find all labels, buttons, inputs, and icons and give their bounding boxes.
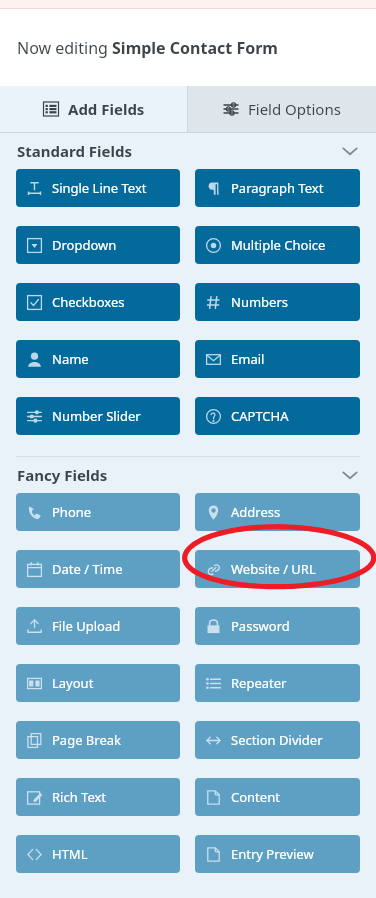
staticText: Now editing Simple Contact Form	[17, 37, 278, 59]
staticText: Checkboxes	[52, 293, 125, 311]
button[interactable]: Email	[195, 340, 360, 378]
staticText: Add Fields	[68, 99, 145, 119]
button[interactable]: Date / Time	[16, 550, 180, 588]
staticText: Single Line Text	[52, 179, 147, 197]
button[interactable]: Rich Text	[16, 778, 180, 816]
staticText: CAPTCHA	[231, 407, 289, 425]
staticText: Entry Preview	[231, 845, 314, 863]
button[interactable]: Multiple Choice	[195, 226, 360, 264]
staticText: Standard Fields	[17, 141, 132, 161]
staticText: Password	[231, 617, 290, 635]
staticText: Website / URL	[231, 560, 316, 578]
button[interactable]: Page Break	[16, 721, 180, 759]
button[interactable]: Checkboxes	[16, 283, 180, 321]
staticText: File Upload	[52, 617, 121, 635]
button[interactable]: Collapse Standard Fields	[338, 139, 362, 163]
staticText: Rich Text	[52, 788, 107, 806]
staticText: Phone	[52, 503, 92, 521]
button[interactable]: Field Options	[188, 86, 376, 132]
button[interactable]: CAPTCHA	[195, 397, 360, 435]
staticText: Layout	[52, 674, 94, 692]
staticText: Email	[231, 350, 265, 368]
staticText: Section Divider	[231, 731, 323, 749]
button[interactable]: Single Line Text	[16, 169, 180, 207]
button[interactable]: Paragraph Text	[195, 169, 360, 207]
staticText: Content	[231, 788, 280, 806]
staticText: Repeater	[231, 674, 287, 692]
button[interactable]: Dropdown	[16, 226, 180, 264]
staticText: Multiple Choice	[231, 236, 326, 254]
button[interactable]: Numbers	[195, 283, 360, 321]
button[interactable]: Name	[16, 340, 180, 378]
button[interactable]: Number Slider	[16, 397, 180, 435]
button[interactable]: Entry Preview	[195, 835, 360, 873]
staticText: Fancy Fields	[17, 465, 108, 485]
staticText: Date / Time	[52, 560, 123, 578]
staticText: Dropdown	[52, 236, 117, 254]
button[interactable]: Content	[195, 778, 360, 816]
button[interactable]: Add Fields	[0, 86, 187, 132]
button[interactable]: Repeater	[195, 664, 360, 702]
staticText: Address	[231, 503, 281, 521]
button[interactable]: Collapse Fancy Fields	[338, 463, 362, 487]
button[interactable]: Password	[195, 607, 360, 645]
staticText: Name	[52, 350, 89, 368]
staticText: HTML	[52, 845, 88, 863]
staticText: Number Slider	[52, 407, 141, 425]
button[interactable]: Phone	[16, 493, 180, 531]
button[interactable]: Section Divider	[195, 721, 360, 759]
button[interactable]: HTML	[16, 835, 180, 873]
button[interactable]: Address	[195, 493, 360, 531]
staticText: Paragraph Text	[231, 179, 324, 197]
staticText: Field Options	[248, 99, 341, 119]
button[interactable]: File Upload	[16, 607, 180, 645]
staticText: Numbers	[231, 293, 288, 311]
button[interactable]: Website / URL	[195, 550, 360, 588]
staticText: Page Break	[52, 731, 121, 749]
button[interactable]: Layout	[16, 664, 180, 702]
